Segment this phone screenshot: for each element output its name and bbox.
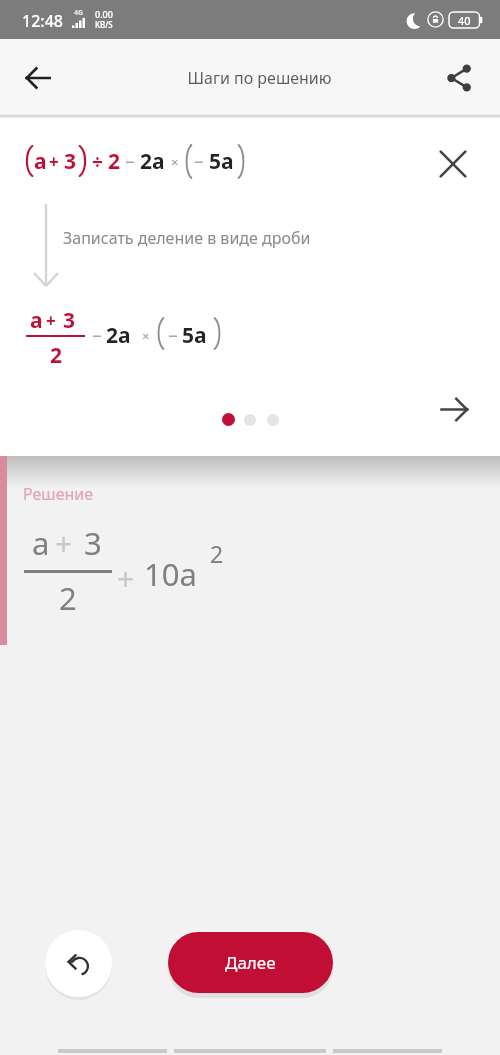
- staticText: +: [46, 309, 56, 332]
- staticText: a: [30, 306, 43, 335]
- button[interactable]: Back: [14, 54, 62, 102]
- staticText: 3: [63, 306, 76, 335]
- staticText: 3: [84, 522, 102, 564]
- staticText: KB/S: [95, 19, 113, 30]
- staticText: 2a: [106, 321, 131, 350]
- staticText: 2: [50, 341, 63, 370]
- staticText: 5a: [209, 147, 234, 176]
- staticText: 0.00: [95, 8, 113, 20]
- staticText: +: [117, 558, 135, 599]
- staticText: Записать деление в виде дроби: [63, 227, 311, 249]
- staticText: 2: [210, 538, 224, 569]
- staticText: ×: [171, 153, 179, 171]
- staticText: 10a: [144, 553, 197, 595]
- staticText: 2: [108, 147, 121, 176]
- staticText: 2a: [140, 147, 165, 176]
- staticText: 12:48: [22, 10, 63, 32]
- staticText: +: [55, 523, 73, 564]
- staticText: −: [92, 324, 102, 347]
- staticText: Шаги по решению: [187, 67, 332, 89]
- staticText: 2: [59, 577, 77, 619]
- staticText: 5a: [182, 321, 207, 350]
- staticText: +: [49, 150, 59, 173]
- staticText: 40: [458, 13, 471, 28]
- button[interactable]: Undo: [45, 930, 112, 997]
- staticText: −: [194, 150, 204, 173]
- staticText: ×: [142, 327, 150, 345]
- button[interactable]: Close: [428, 139, 477, 188]
- staticText: a: [34, 147, 47, 176]
- staticText: −: [168, 324, 178, 347]
- staticText: 3: [64, 147, 77, 176]
- button[interactable]: Далее: [168, 932, 333, 993]
- staticText: −: [125, 150, 135, 173]
- staticText: Решение: [23, 483, 94, 505]
- button[interactable]: Share: [437, 56, 481, 100]
- staticText: ÷: [92, 149, 103, 175]
- staticText: Далее: [225, 951, 276, 974]
- staticText: a: [32, 522, 50, 564]
- button[interactable]: Next step: [430, 385, 478, 433]
- staticText: 4G: [74, 8, 84, 18]
